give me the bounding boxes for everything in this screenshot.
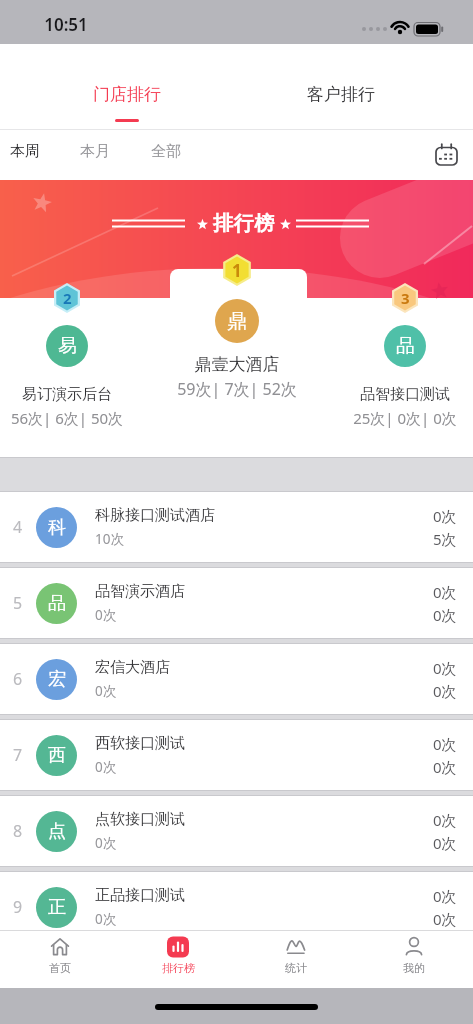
staticText: 10:51 [40,13,92,36]
staticText: 25次| 0次| 0次 [338,408,472,428]
staticText: 0次 [433,833,457,853]
staticText: 点软接口测试 [95,810,185,829]
staticText: 0次 [433,886,457,906]
staticText: 统计 [285,961,307,975]
staticText: 1 [232,259,242,282]
staticText: 0次 [433,681,457,701]
button[interactable]: 本月 [80,142,110,161]
staticText: 0次 [433,582,457,602]
staticText: 宏信大酒店 [95,658,170,677]
staticText: 点 [48,820,66,843]
button[interactable]: 6 [0,644,473,714]
staticText: 5次 [433,529,457,549]
staticText: 4 [13,516,23,538]
staticText: 我的 [403,961,425,975]
staticText: 0次 [95,606,117,624]
staticText: 56次| 6次| 50次 [0,408,134,428]
staticText: 0次 [433,506,457,526]
button[interactable]: 4 [0,492,473,562]
staticText: 正品接口测试 [95,886,185,905]
staticText: 10次 [95,530,124,548]
staticText: 科脉接口测试酒店 [95,506,215,525]
staticText: 排行榜 [162,961,195,975]
button[interactable]: 我的 [355,931,473,975]
staticText: 西软接口测试 [95,734,185,753]
staticText: 0次 [95,682,117,700]
staticText: 本月 [80,142,110,161]
button[interactable]: 7 [0,720,473,790]
staticText: 0次 [433,605,457,625]
staticText: 0次 [433,757,457,777]
staticText: 本周 [10,142,40,161]
staticText: 客户排行 [307,84,375,105]
staticText: 0次 [95,758,117,776]
staticText: 品 [48,592,66,615]
staticText: 0次 [433,810,457,830]
staticText: 鼎壹大酒店 [157,354,317,375]
staticText: 科 [48,516,66,539]
staticText: 品 [396,334,415,358]
button[interactable] [433,143,463,169]
staticText: 易 [58,334,77,358]
button[interactable]: 9 [0,872,473,942]
staticText: 宏 [48,668,66,691]
staticText: 6 [13,668,23,690]
staticText: 0次 [95,910,117,928]
button[interactable]: 客户排行 [291,84,391,122]
button[interactable]: 门店排行 [77,84,177,122]
staticText: 鼎 [227,309,247,334]
staticText: 0次 [433,658,457,678]
staticText: 59次| 7次| 52次 [157,378,317,400]
staticText: 全部 [151,142,181,161]
staticText: 西 [48,744,66,767]
button[interactable]: 5 [0,568,473,638]
staticText: 品智演示酒店 [95,582,185,601]
staticText: 品智接口测试 [338,385,472,404]
staticText: 9 [13,896,23,918]
staticText: 易订演示后台 [0,385,134,404]
staticText: 3 [401,288,410,308]
staticText: 正 [48,896,66,919]
staticText: 首页 [49,961,71,975]
button[interactable]: 本周 [10,142,40,161]
button[interactable]: 排行榜 [119,931,237,975]
staticText: 0次 [433,909,457,929]
staticText: 7 [13,744,23,766]
staticText: 5 [13,592,23,614]
staticText: 0次 [95,834,117,852]
staticText: 0次 [433,734,457,754]
button[interactable]: 统计 [237,931,355,975]
staticText: 8 [13,820,23,842]
button[interactable]: 8 [0,796,473,866]
button[interactable]: 全部 [151,142,181,161]
staticText: 排行榜 [184,211,304,236]
staticText: 门店排行 [93,84,161,105]
button[interactable]: 首页 [0,931,119,975]
staticText: 2 [63,288,72,308]
